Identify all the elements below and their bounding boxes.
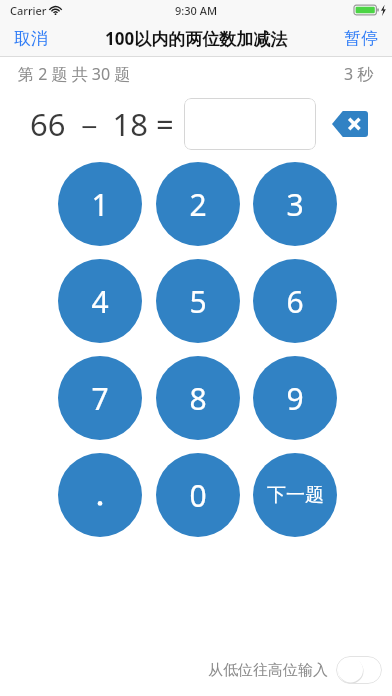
staticText: 0 xyxy=(189,475,207,516)
button[interactable]: 从低位往高位输入 xyxy=(208,656,382,684)
staticText: 3 xyxy=(286,184,304,225)
button[interactable]: 5 xyxy=(156,259,240,343)
button[interactable]: 下一题 xyxy=(253,453,337,537)
staticText: 66 － 18 = xyxy=(30,103,174,145)
staticText: 从低位往高位输入 xyxy=(208,661,328,680)
button[interactable]: 3 xyxy=(253,162,337,246)
button[interactable]: 0 xyxy=(156,453,240,537)
staticText: Carrier xyxy=(10,3,47,18)
staticText: 第 2 题 共 30 题 xyxy=(18,63,131,85)
button[interactable]: 1 xyxy=(58,162,142,246)
button[interactable]: Backspace xyxy=(328,107,372,141)
staticText: 1 xyxy=(91,184,109,225)
staticText: 100以内的两位数加减法 xyxy=(105,27,288,50)
staticText: 下一题 xyxy=(267,483,324,507)
staticText: 2 xyxy=(189,184,207,225)
staticText: 6 xyxy=(286,281,304,322)
staticText: 3 秒 xyxy=(344,63,374,85)
button[interactable] xyxy=(58,453,142,537)
staticText: 8 xyxy=(189,378,207,419)
staticText: 4 xyxy=(91,281,109,322)
button[interactable]: 6 xyxy=(253,259,337,343)
button[interactable]: 9 xyxy=(253,356,337,440)
button[interactable]: 7 xyxy=(58,356,142,440)
button[interactable]: 8 xyxy=(156,356,240,440)
staticText: 暂停 xyxy=(344,28,378,49)
button[interactable]: 4 xyxy=(58,259,142,343)
staticText: 7 xyxy=(91,378,109,419)
button[interactable]: 暂停 xyxy=(330,22,392,55)
staticText: 5 xyxy=(189,281,207,322)
button[interactable]: 取消 xyxy=(0,22,62,55)
staticText: 取消 xyxy=(14,28,48,49)
staticText: 9:30 AM xyxy=(175,3,218,18)
staticText: 9 xyxy=(286,378,304,419)
button[interactable]: 2 xyxy=(156,162,240,246)
button[interactable] xyxy=(184,98,316,150)
